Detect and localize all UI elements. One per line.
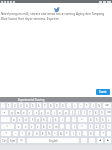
button[interactable]: 1 xyxy=(7,103,11,108)
button[interactable]: ↵ xyxy=(78,117,87,122)
button[interactable]: ] xyxy=(76,110,80,115)
button[interactable]: ; xyxy=(66,117,70,122)
button[interactable]: t xyxy=(34,110,38,115)
button[interactable]: c xyxy=(30,124,34,129)
button[interactable]: @ xyxy=(27,131,32,136)
button[interactable]: 6 xyxy=(37,103,41,108)
button[interactable]: % xyxy=(97,103,101,108)
button[interactable]: ↑ xyxy=(1,131,11,136)
button[interactable]: n xyxy=(48,124,52,129)
button[interactable]: # xyxy=(34,131,39,136)
button[interactable]: . xyxy=(81,138,87,143)
button[interactable]: ~ xyxy=(79,103,83,108)
button[interactable]: Experimental Sharing xyxy=(0,97,112,102)
button[interactable]: d xyxy=(24,117,28,122)
button[interactable]: ⇧ xyxy=(78,124,87,129)
button[interactable]: v xyxy=(36,124,40,129)
button[interactable]: English xyxy=(27,138,79,143)
button[interactable]: ` xyxy=(1,103,5,108)
button[interactable]: Tweet xyxy=(96,89,110,95)
button[interactable]: g xyxy=(36,117,40,122)
button[interactable]: ⌫ xyxy=(103,103,111,108)
button[interactable]: e xyxy=(22,110,26,115)
button[interactable]: ) xyxy=(77,131,81,136)
button[interactable]: * xyxy=(85,103,89,108)
staticText: x xyxy=(25,125,27,129)
button[interactable]: \ xyxy=(82,110,86,115)
button[interactable]: = xyxy=(73,103,77,108)
button[interactable]: 1 xyxy=(89,124,93,129)
button[interactable]: . xyxy=(66,124,70,129)
button[interactable]: y xyxy=(40,110,44,115)
button[interactable]: % xyxy=(47,131,51,136)
button[interactable]: f xyxy=(30,117,34,122)
button[interactable]: b xyxy=(42,124,46,129)
button[interactable]: 6 xyxy=(101,117,105,122)
button[interactable]: ⇥ xyxy=(1,110,8,115)
button[interactable]: q xyxy=(10,110,14,115)
button[interactable]: ' xyxy=(72,117,76,122)
button[interactable]: i xyxy=(52,110,56,115)
button[interactable]: 4 xyxy=(25,103,29,108)
button[interactable]: ( xyxy=(71,131,75,136)
button[interactable]: 3 xyxy=(101,124,105,129)
button[interactable]: o xyxy=(58,110,62,115)
button[interactable]: ↵ xyxy=(107,124,111,129)
button[interactable]: . xyxy=(95,131,99,136)
button[interactable]: w xyxy=(16,110,20,115)
button[interactable]: ! xyxy=(20,131,25,136)
button[interactable]: k xyxy=(54,117,58,122)
button[interactable]: [ xyxy=(70,110,74,115)
button[interactable]: & xyxy=(59,131,63,136)
button[interactable]: ⌫ xyxy=(106,110,111,115)
staticText: ⇧ xyxy=(81,125,84,128)
button[interactable]: ^ xyxy=(53,131,57,136)
button[interactable]: 4 xyxy=(89,117,93,122)
button[interactable]: 5 xyxy=(31,103,35,108)
button[interactable]: a xyxy=(12,117,16,122)
button[interactable]: ↑ xyxy=(101,131,105,136)
staticText: ↑ xyxy=(5,132,8,135)
button[interactable]: r xyxy=(28,110,32,115)
button[interactable]: 3 xyxy=(19,103,23,108)
button[interactable]: 0 xyxy=(61,103,65,108)
button[interactable]: j xyxy=(48,117,52,122)
button[interactable]: ⇧ xyxy=(1,124,14,129)
button[interactable]: 9 xyxy=(55,103,59,108)
button[interactable]: 9 xyxy=(100,110,104,115)
button[interactable]: 2 xyxy=(13,103,17,108)
button[interactable]: $ xyxy=(41,131,45,136)
button[interactable]: ▶ xyxy=(105,138,111,143)
button[interactable]: ◀ xyxy=(97,138,103,143)
staticText: + xyxy=(108,118,110,122)
button[interactable]: m xyxy=(54,124,58,129)
button[interactable]: + xyxy=(107,117,111,122)
button[interactable]: _ xyxy=(83,131,87,136)
button[interactable]: 0 xyxy=(89,131,93,136)
button[interactable]: / xyxy=(91,103,95,108)
button[interactable]: , xyxy=(60,124,64,129)
button[interactable]: Sym xyxy=(9,138,16,143)
button[interactable]: s xyxy=(18,117,22,122)
button[interactable]: / xyxy=(72,124,76,129)
button[interactable]: l xyxy=(60,117,64,122)
button[interactable]: u xyxy=(46,110,50,115)
button[interactable]: 7 xyxy=(88,110,92,115)
button[interactable]: 2 xyxy=(95,124,99,129)
button[interactable]: 8 xyxy=(94,110,98,115)
button[interactable]: 8 xyxy=(49,103,53,108)
button[interactable]: ~ xyxy=(13,131,18,136)
button[interactable]: 5 xyxy=(95,117,99,122)
button[interactable]: p xyxy=(64,110,68,115)
button[interactable]: Ctrl xyxy=(1,138,7,143)
button[interactable]: x xyxy=(23,124,28,129)
button[interactable]: z xyxy=(16,124,21,129)
button[interactable]: 7 xyxy=(43,103,47,108)
button[interactable]: - xyxy=(67,103,71,108)
button[interactable]: ☺ xyxy=(18,138,25,143)
button[interactable]: * xyxy=(65,131,69,136)
button[interactable]: h xyxy=(42,117,46,122)
